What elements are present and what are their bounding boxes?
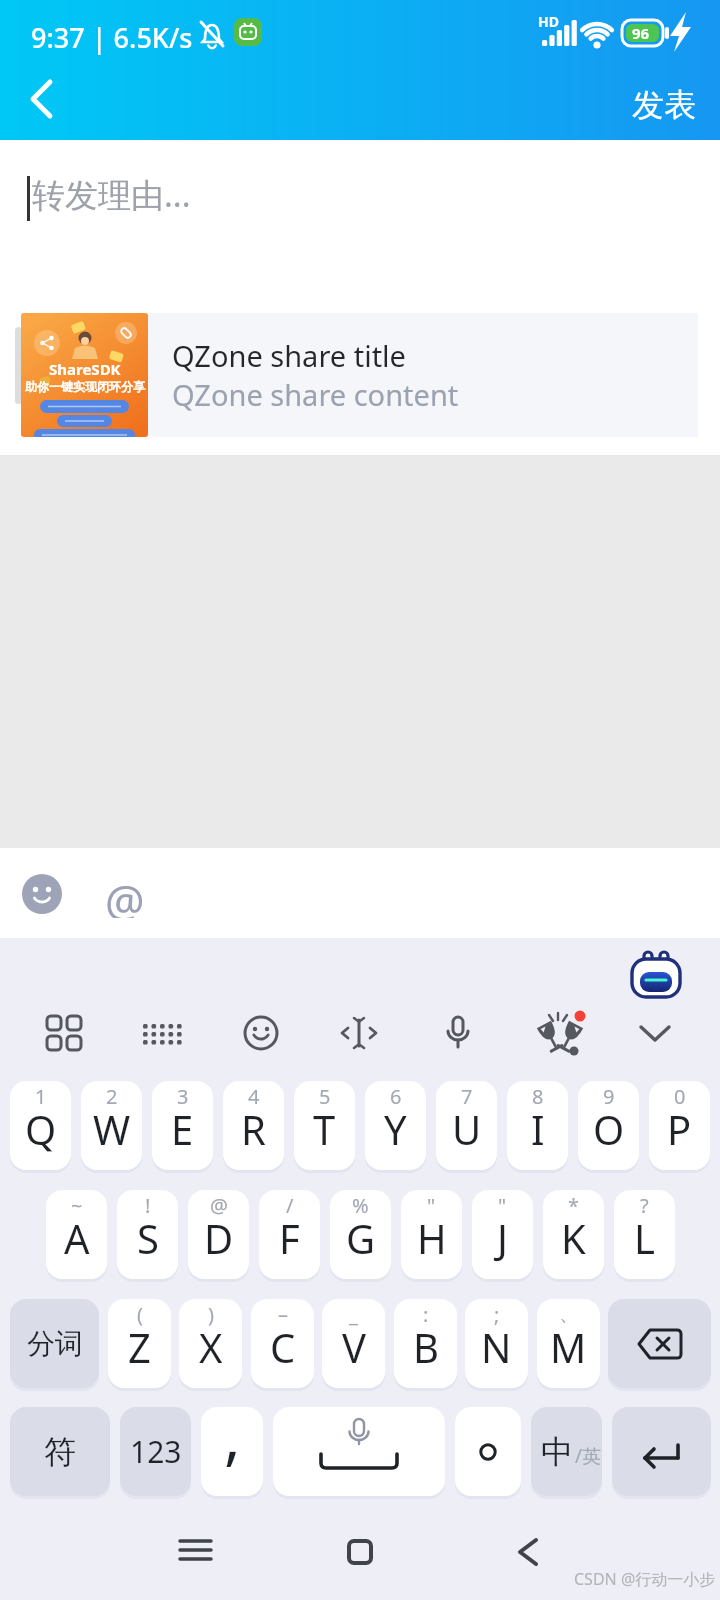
button[interactable]: ~ [46, 1190, 107, 1279]
button[interactable] [538, 1010, 586, 1058]
staticText: F [279, 1211, 300, 1265]
button[interactable] [28, 80, 64, 120]
button[interactable] [180, 1538, 212, 1566]
staticText: 1 [35, 1083, 47, 1110]
staticText: 8 [532, 1083, 544, 1110]
staticText: W [93, 1102, 131, 1156]
button[interactable]: : [394, 1299, 457, 1388]
button[interactable]: 符 [10, 1407, 110, 1496]
staticText: 6 [390, 1083, 402, 1110]
button[interactable] [273, 1407, 445, 1496]
staticText: 符 [44, 1432, 76, 1472]
button[interactable]: 5 [294, 1081, 355, 1170]
button[interactable] [337, 1011, 381, 1055]
staticText: QZone share content [172, 375, 459, 414]
staticText: 7 [461, 1083, 473, 1110]
button[interactable]: 2 [81, 1081, 142, 1170]
button[interactable] [42, 1011, 86, 1055]
button[interactable]: ? [614, 1190, 675, 1279]
staticText: HD [538, 12, 559, 31]
button[interactable]: 中 [531, 1407, 602, 1496]
button[interactable]: – [251, 1299, 314, 1388]
staticText: : [423, 1301, 429, 1328]
staticText: I [531, 1102, 545, 1156]
staticText: " [498, 1192, 507, 1219]
staticText: O [593, 1102, 625, 1156]
staticText: 96 [632, 23, 650, 43]
button[interactable] [630, 951, 682, 997]
button[interactable]: 9 [578, 1081, 639, 1170]
button[interactable]: " [472, 1190, 533, 1279]
button[interactable]: _ [322, 1299, 385, 1388]
staticText: ShareSDK [49, 359, 121, 379]
button[interactable]: @ [188, 1190, 249, 1279]
button[interactable]: 1 [10, 1081, 71, 1170]
button[interactable]: ! [117, 1190, 178, 1279]
staticText: 5 [319, 1083, 331, 1110]
staticText: J [497, 1211, 508, 1265]
button[interactable]: 123 [120, 1407, 191, 1496]
button[interactable]: 8 [507, 1081, 568, 1170]
button[interactable] [633, 1011, 677, 1055]
staticText: ) [208, 1301, 214, 1328]
button[interactable]: 发表 [614, 70, 714, 140]
staticText: 转发理由... [32, 172, 191, 217]
staticText: 3 [177, 1083, 189, 1110]
staticText: QZone share title [172, 336, 406, 375]
button[interactable] [455, 1407, 521, 1496]
button[interactable]: , [201, 1407, 263, 1496]
staticText: ( [137, 1301, 143, 1328]
staticText: 9 [603, 1083, 615, 1110]
staticText: Q [25, 1102, 57, 1156]
staticText: N [481, 1320, 512, 1374]
button[interactable]: 0 [649, 1081, 710, 1170]
staticText: L [634, 1211, 655, 1265]
button[interactable] [436, 1011, 480, 1055]
staticText: 助你一键实现闭环分享 [25, 379, 145, 394]
button[interactable]: ShareSDK [21, 313, 698, 437]
button[interactable]: ; [465, 1299, 528, 1388]
staticText: T [313, 1102, 336, 1156]
staticText: ! [145, 1192, 151, 1219]
button[interactable]: ) [179, 1299, 242, 1388]
button[interactable] [140, 1011, 184, 1055]
button[interactable]: 、 [537, 1299, 600, 1388]
staticText: E [171, 1102, 194, 1156]
staticText: % [352, 1192, 369, 1219]
staticText: CSDN @行动一小步 [574, 1568, 716, 1590]
staticText: S [137, 1211, 159, 1265]
staticText: K [561, 1211, 586, 1265]
staticText: /英 [575, 1443, 602, 1469]
staticText: H [417, 1211, 447, 1265]
staticText: _ [349, 1301, 358, 1328]
staticText: 、 [559, 1301, 579, 1326]
button[interactable]: ( [108, 1299, 171, 1388]
staticText: ? [640, 1192, 649, 1219]
button[interactable] [516, 1539, 540, 1565]
button[interactable] [347, 1539, 373, 1565]
button[interactable]: " [401, 1190, 462, 1279]
button[interactable] [608, 1299, 711, 1388]
button[interactable]: @ [101, 870, 149, 918]
button[interactable]: 6 [365, 1081, 426, 1170]
button[interactable]: % [330, 1190, 391, 1279]
button[interactable]: * [543, 1190, 604, 1279]
staticText: 发表 [632, 85, 696, 125]
button[interactable]: 3 [152, 1081, 213, 1170]
button[interactable] [239, 1011, 283, 1055]
button[interactable]: 4 [223, 1081, 284, 1170]
staticText: D [204, 1211, 234, 1265]
button[interactable]: 7 [436, 1081, 497, 1170]
button[interactable]: 分词 [10, 1299, 99, 1388]
button[interactable] [612, 1407, 711, 1496]
staticText: 分词 [27, 1326, 83, 1361]
staticText: Z [128, 1320, 151, 1374]
staticText: R [241, 1102, 266, 1156]
staticText: V [342, 1320, 366, 1374]
button[interactable] [22, 874, 62, 914]
staticText: 0 [674, 1083, 686, 1110]
button[interactable]: / [259, 1190, 320, 1279]
staticText: @ [105, 870, 145, 918]
staticText: X [199, 1320, 223, 1374]
staticText: Y [384, 1102, 407, 1156]
